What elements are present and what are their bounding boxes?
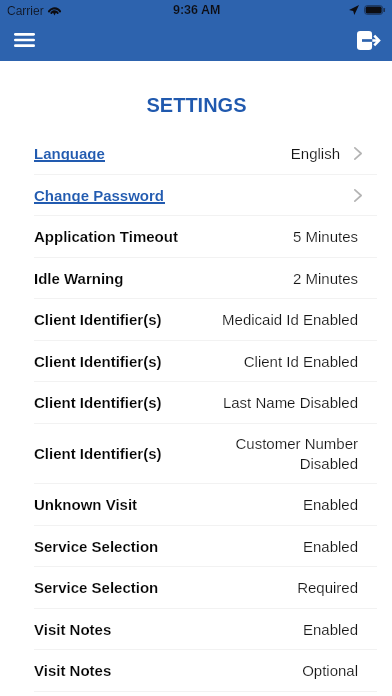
button[interactable]: Log out (350, 23, 386, 59)
staticText: 9:36 AM (173, 3, 221, 17)
staticText: Language (34, 145, 105, 162)
button[interactable]: Unknown Visit (0, 484, 392, 526)
button[interactable]: Language (0, 133, 392, 175)
staticText: 5 Minutes (292, 228, 358, 245)
button[interactable]: Client Identifier(s) (0, 299, 392, 341)
staticText: Client Identifier(s) (34, 353, 162, 370)
staticText: Client Id Enabled (243, 353, 358, 370)
button[interactable]: Open navigation menu (6, 23, 42, 59)
button[interactable]: Visit Notes (0, 650, 392, 692)
staticText: Enabled (302, 621, 358, 638)
staticText: Client Identifier(s) (34, 394, 162, 411)
staticText: Last Name Disabled (222, 394, 358, 411)
button[interactable]: Service Selection (0, 526, 392, 567)
staticText: Medicaid Id Enabled (222, 311, 358, 328)
button[interactable]: Idle Warning (0, 258, 392, 299)
button[interactable]: Client Identifier(s) (0, 341, 392, 382)
staticText: Service Selection (34, 538, 159, 555)
staticText: Customer Number Disabled (235, 435, 358, 472)
staticText: 2 Minutes (292, 270, 358, 287)
button[interactable]: Client Identifier(s) (0, 382, 392, 424)
button[interactable]: Change Password (0, 175, 392, 216)
button[interactable]: Client Identifier(s) (0, 424, 392, 484)
staticText: English (290, 145, 340, 162)
button[interactable]: Visit Notes (0, 609, 392, 650)
staticText: Enabled (302, 538, 358, 555)
staticText: Visit Notes (34, 621, 112, 638)
staticText: Optional (302, 662, 358, 679)
staticText: Client Identifier(s) (34, 445, 162, 462)
button[interactable]: Service Selection (0, 567, 392, 609)
staticText: Client Identifier(s) (34, 311, 162, 328)
staticText: Required (297, 579, 358, 596)
staticText: Service Selection (34, 579, 159, 596)
staticText: Application Timeout (34, 228, 178, 245)
staticText: Unknown Visit (34, 496, 138, 513)
staticText: SETTINGS (146, 94, 247, 116)
staticText: Carrier (7, 4, 44, 17)
button[interactable]: Application Timeout (0, 216, 392, 258)
staticText: Visit Notes (34, 662, 112, 679)
staticText: Change Password (34, 187, 165, 204)
staticText: Idle Warning (34, 270, 124, 287)
staticText: Enabled (302, 496, 358, 513)
